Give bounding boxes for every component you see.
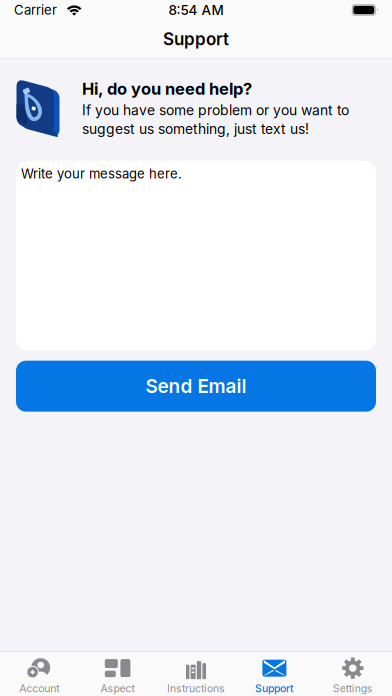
staticText: Support <box>163 29 229 49</box>
staticText: Support <box>255 682 294 695</box>
staticText: Instructions <box>167 682 225 695</box>
staticText: Aspect <box>101 682 135 695</box>
button[interactable]: Instructions <box>157 649 235 696</box>
button[interactable]: Account <box>0 649 78 696</box>
staticText: Hi, do you need help? <box>82 79 252 99</box>
staticText: Carrier <box>14 2 57 18</box>
button[interactable]: Support <box>235 649 314 696</box>
staticText: If you have some problem or you want to … <box>82 102 349 137</box>
staticText: Write your message here. <box>21 166 182 182</box>
staticText: Account <box>19 682 59 695</box>
button[interactable]: Send Email <box>16 361 376 412</box>
staticText: 8:54 AM <box>168 2 223 18</box>
button[interactable]: Aspect <box>78 649 157 696</box>
staticText: Settings <box>333 682 373 695</box>
staticText: Send Email <box>145 375 246 398</box>
button[interactable]: Settings <box>314 649 392 696</box>
